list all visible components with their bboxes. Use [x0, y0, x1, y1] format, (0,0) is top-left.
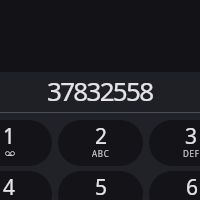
button[interactable]: 6	[149, 171, 200, 200]
staticText: 3	[185, 122, 198, 151]
other: Voicemail	[5, 148, 15, 159]
staticText: ABC	[92, 148, 110, 159]
button[interactable]: 37832558	[0, 72, 200, 112]
staticText: 37832558	[47, 73, 153, 108]
staticText: 5	[95, 173, 108, 200]
staticText: 1	[3, 122, 16, 151]
button[interactable]: 1	[0, 120, 52, 166]
button[interactable]: 4	[0, 171, 52, 200]
staticText: 6	[186, 173, 199, 200]
button[interactable]: 3	[149, 120, 200, 166]
staticText: 2	[95, 122, 108, 151]
staticText: 4	[3, 173, 16, 200]
button[interactable]: 2	[58, 120, 143, 166]
button[interactable]: 5	[58, 171, 143, 200]
staticText: DEF	[183, 148, 200, 159]
